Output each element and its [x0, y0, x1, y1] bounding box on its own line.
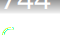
staticText: 7446 — [0, 0, 51, 35]
